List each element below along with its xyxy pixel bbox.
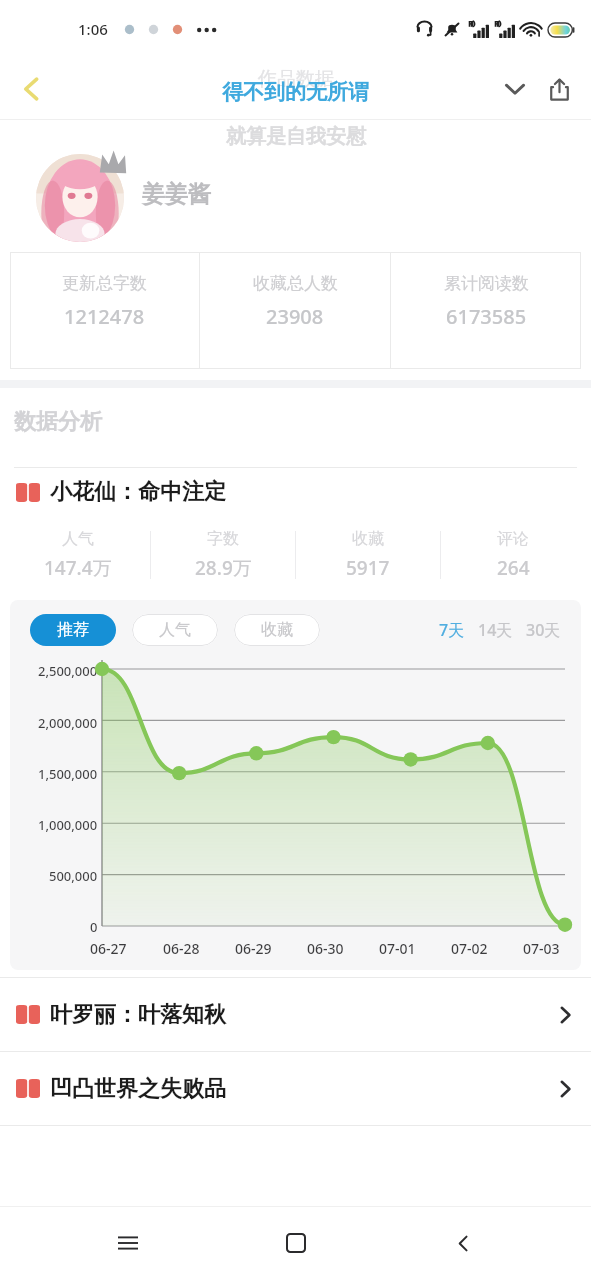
staticText: 1,000,000	[38, 816, 98, 834]
staticText: 1,500,000	[38, 765, 98, 783]
staticText: 7天	[439, 619, 465, 641]
button[interactable]: Back	[8, 65, 56, 113]
staticText: 累计阅读数	[444, 273, 529, 294]
staticText: 1:06	[78, 19, 108, 39]
staticText: 人气	[159, 620, 191, 640]
staticText: 更新总字数	[62, 273, 147, 294]
button[interactable]: Back	[435, 1215, 491, 1271]
button[interactable]: 人气	[6, 516, 150, 594]
staticText: 收藏总人数	[253, 273, 338, 294]
staticText: 人气	[62, 529, 94, 549]
button[interactable]: 30天	[524, 615, 563, 645]
button[interactable]: 评论	[441, 516, 585, 594]
staticText: 0	[90, 918, 98, 936]
staticText: 2,500,000	[38, 662, 98, 680]
staticText: 收藏	[352, 529, 384, 549]
button[interactable]: 叶罗丽：叶落知秋	[0, 978, 591, 1051]
staticText: 就算是自我安慰	[226, 124, 366, 149]
staticText: 姜姜酱	[142, 180, 211, 209]
button[interactable]: 7天	[437, 615, 467, 645]
staticText: 147.4万	[44, 555, 112, 581]
staticText: 06-29	[235, 939, 272, 958]
staticText: 收藏	[261, 620, 293, 640]
staticText: 小花仙：命中注定	[50, 478, 226, 506]
button[interactable]: 人气	[132, 614, 218, 646]
button[interactable]: Expand	[493, 67, 537, 111]
button[interactable]: Share	[537, 67, 581, 111]
button[interactable]: 推荐	[30, 614, 116, 646]
staticText: 500,000	[49, 867, 98, 885]
staticText: 1212478	[64, 303, 145, 330]
staticText: 叶罗丽：叶落知秋	[50, 1001, 226, 1029]
button[interactable]: Recent apps	[100, 1215, 156, 1271]
staticText: 得不到的无所谓	[222, 79, 369, 105]
staticText: 字数	[207, 529, 239, 549]
button[interactable]: Home	[268, 1215, 324, 1271]
staticText: 06-30	[307, 939, 344, 958]
staticText: 07-03	[523, 939, 560, 958]
button[interactable]: 小花仙：命中注定	[0, 468, 591, 516]
staticText: 评论	[497, 529, 529, 549]
button[interactable]: 14天	[476, 615, 515, 645]
staticText: 06-27	[90, 939, 127, 958]
button[interactable]: 收藏	[234, 614, 320, 646]
staticText: 28.9万	[195, 555, 252, 581]
staticText: 264	[497, 555, 530, 581]
button[interactable]: 凹凸世界之失败品	[0, 1052, 591, 1125]
staticText: 6173585	[446, 303, 527, 330]
button[interactable]: 收藏	[296, 516, 440, 594]
staticText: 07-02	[451, 939, 488, 958]
staticText: 5917	[346, 555, 390, 581]
staticText: 06-28	[163, 939, 200, 958]
staticText: 07-01	[379, 939, 416, 958]
staticText: 30天	[526, 619, 561, 641]
button[interactable]: 字数	[151, 516, 295, 594]
button[interactable]: 收藏总人数	[200, 252, 390, 369]
staticText: 23908	[266, 303, 324, 330]
staticText: 14天	[478, 619, 513, 641]
staticText: 数据分析	[14, 408, 102, 436]
button[interactable]: 更新总字数	[10, 252, 199, 369]
staticText: 作品数据	[258, 67, 334, 91]
button[interactable]: 累计阅读数	[391, 252, 581, 369]
staticText: 2,000,000	[38, 714, 98, 732]
staticText: 推荐	[57, 620, 89, 640]
staticText: 凹凸世界之失败品	[50, 1075, 226, 1103]
